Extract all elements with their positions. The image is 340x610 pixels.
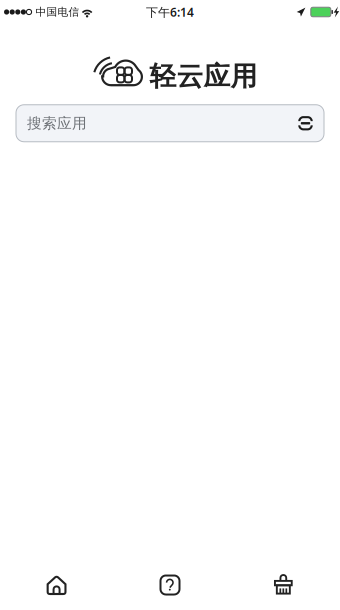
button[interactable]: 搜索应用 [16, 105, 324, 142]
staticText: 轻云应用 [149, 60, 257, 93]
button[interactable]: 清理 [227, 575, 340, 595]
staticText: 下午6:14 [146, 4, 194, 20]
button[interactable]: 帮助 [113, 575, 227, 595]
button[interactable]: 首页 [0, 575, 113, 595]
staticText: 搜索应用 [27, 114, 87, 132]
staticText: 中国电信 [36, 5, 80, 18]
